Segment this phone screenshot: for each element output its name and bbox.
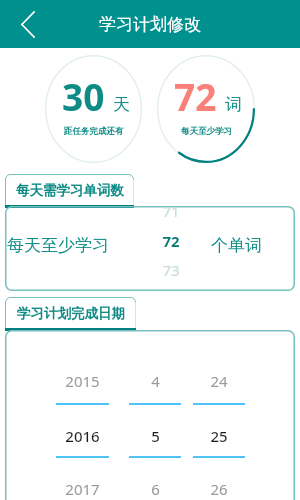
staticText: 30 <box>62 71 105 121</box>
staticText: 71 <box>162 206 180 221</box>
staticText: 26 <box>210 479 228 499</box>
button[interactable]: 每天需学习单词数 <box>5 174 134 208</box>
staticText: 距任务完成还有 <box>64 126 124 137</box>
staticText: 72 <box>162 231 180 251</box>
staticText: 24 <box>210 371 228 391</box>
staticText: 个单词 <box>211 235 262 256</box>
button[interactable]: 71 <box>155 206 186 291</box>
staticText: 每天至少学习 <box>181 126 232 137</box>
staticText: 73 <box>162 260 180 280</box>
staticText: 2015 <box>65 371 100 391</box>
staticText: 每天至少学习 <box>7 235 109 256</box>
staticText: 词 <box>225 94 242 115</box>
staticText: 2017 <box>65 479 100 499</box>
staticText: 每天需学习单词数 <box>16 182 124 199</box>
staticText: 学习计划修改 <box>99 14 201 35</box>
staticText: 2016 <box>65 426 100 446</box>
staticText: 25 <box>210 426 228 446</box>
staticText: 天 <box>113 94 130 115</box>
staticText: 5 <box>151 426 160 446</box>
button[interactable]: 学习计划完成日期 <box>5 297 136 331</box>
staticText: 6 <box>151 479 160 499</box>
button[interactable]: Back <box>9 5 47 43</box>
staticText: 学习计划完成日期 <box>17 305 125 322</box>
staticText: 72 <box>174 71 217 121</box>
staticText: 4 <box>151 371 160 391</box>
